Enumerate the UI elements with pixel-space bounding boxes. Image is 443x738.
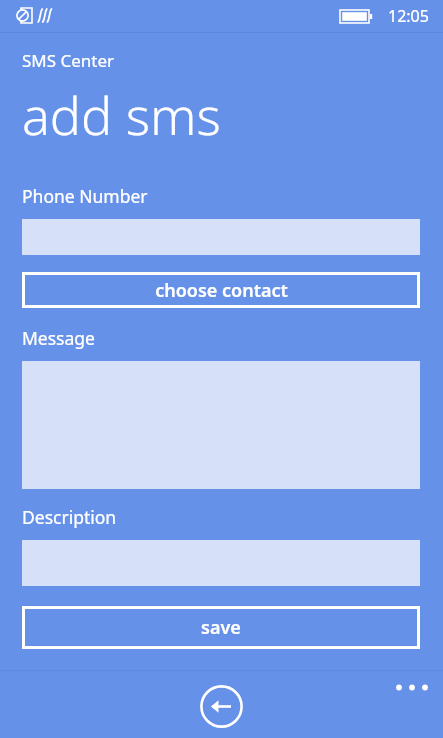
- button[interactable]: Back: [200, 685, 243, 728]
- staticText: Description: [22, 505, 117, 529]
- staticText: choose contact: [155, 278, 288, 303]
- staticText: add sms: [22, 79, 221, 150]
- staticText: Message: [22, 326, 95, 350]
- staticText: save: [201, 615, 241, 640]
- button[interactable]: choose contact: [22, 272, 420, 308]
- staticText: 12:05: [388, 5, 429, 27]
- button[interactable]: More options: [394, 680, 434, 712]
- button[interactable]: save: [22, 606, 420, 649]
- staticText: Phone Number: [22, 184, 148, 208]
- staticText: SMS Center: [22, 49, 115, 72]
